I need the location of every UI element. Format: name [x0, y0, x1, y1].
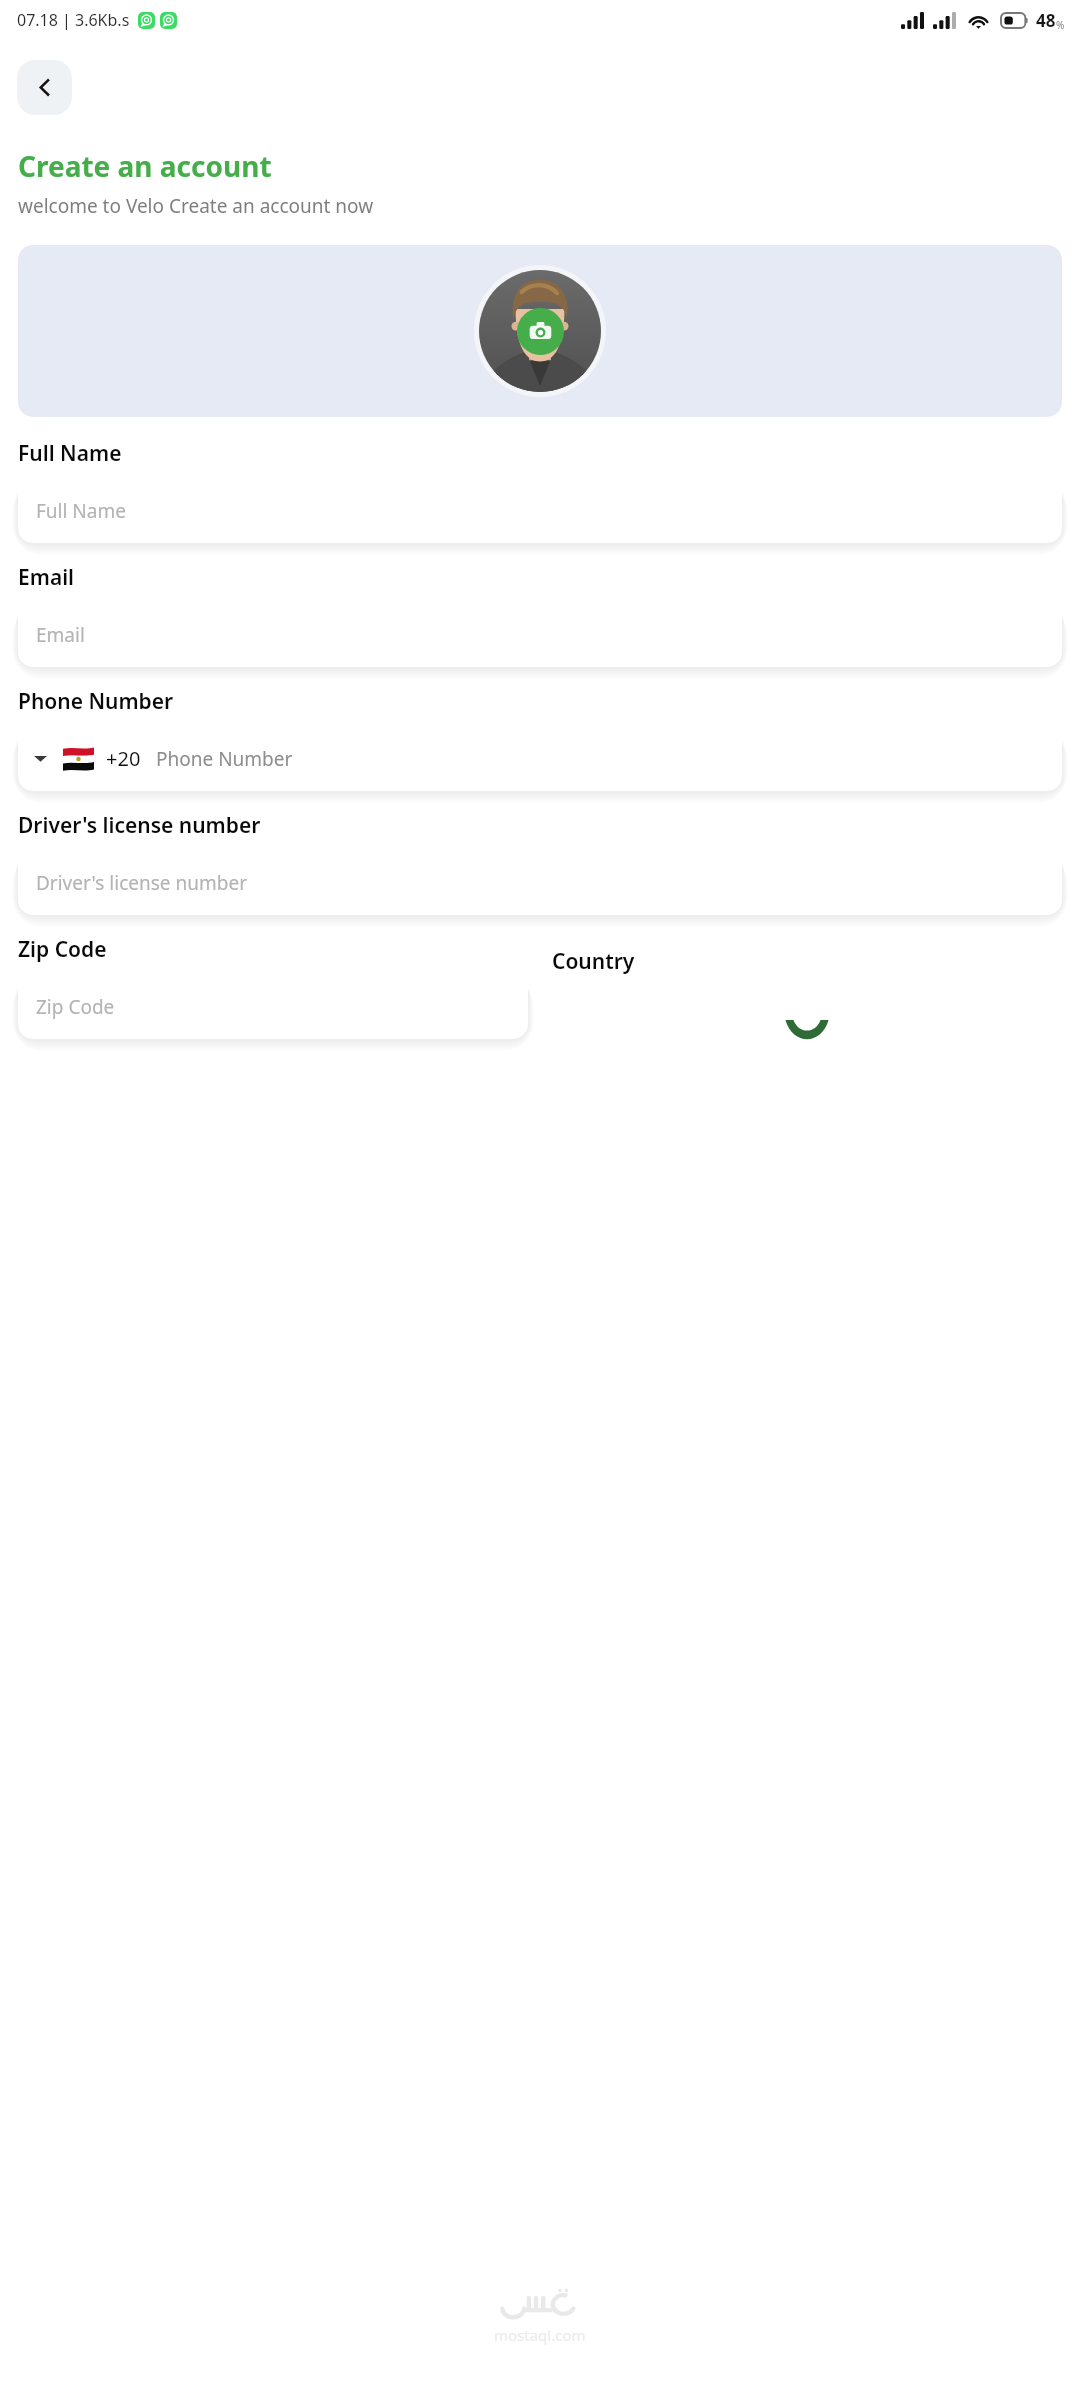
button[interactable]: [552, 1020, 1062, 1062]
button[interactable]: Change profile photo: [474, 265, 606, 397]
staticText: Email: [36, 622, 85, 648]
staticText: Driver's license number: [36, 870, 247, 896]
staticText: welcome to Velo Create an account now: [18, 193, 374, 219]
staticText: Full Name: [36, 498, 126, 524]
staticText: Driver's license number: [18, 811, 261, 840]
staticText: +20: [106, 745, 141, 772]
button[interactable]: Email: [18, 602, 1062, 667]
staticText: Full Name: [18, 439, 122, 468]
staticText: Email: [18, 563, 75, 592]
button[interactable]: Back: [17, 60, 72, 115]
staticText: %: [1056, 18, 1065, 32]
staticText: Phone Number: [18, 687, 174, 716]
staticText: Phone Number: [156, 746, 293, 772]
staticText: Zip Code: [36, 994, 115, 1020]
button[interactable]: Zip Code: [18, 974, 528, 1039]
staticText: Country: [552, 947, 635, 976]
button[interactable]: Driver's license number: [18, 850, 1062, 915]
staticText: Create an account: [18, 147, 272, 185]
staticText: mostaql.com: [494, 2325, 586, 2345]
staticText: 07.18 | 3.6Kb.s: [17, 9, 130, 31]
button[interactable]: +20: [18, 726, 1062, 791]
staticText: Zip Code: [18, 935, 107, 964]
staticText: 48: [1036, 9, 1056, 32]
button[interactable]: Full Name: [18, 478, 1062, 543]
